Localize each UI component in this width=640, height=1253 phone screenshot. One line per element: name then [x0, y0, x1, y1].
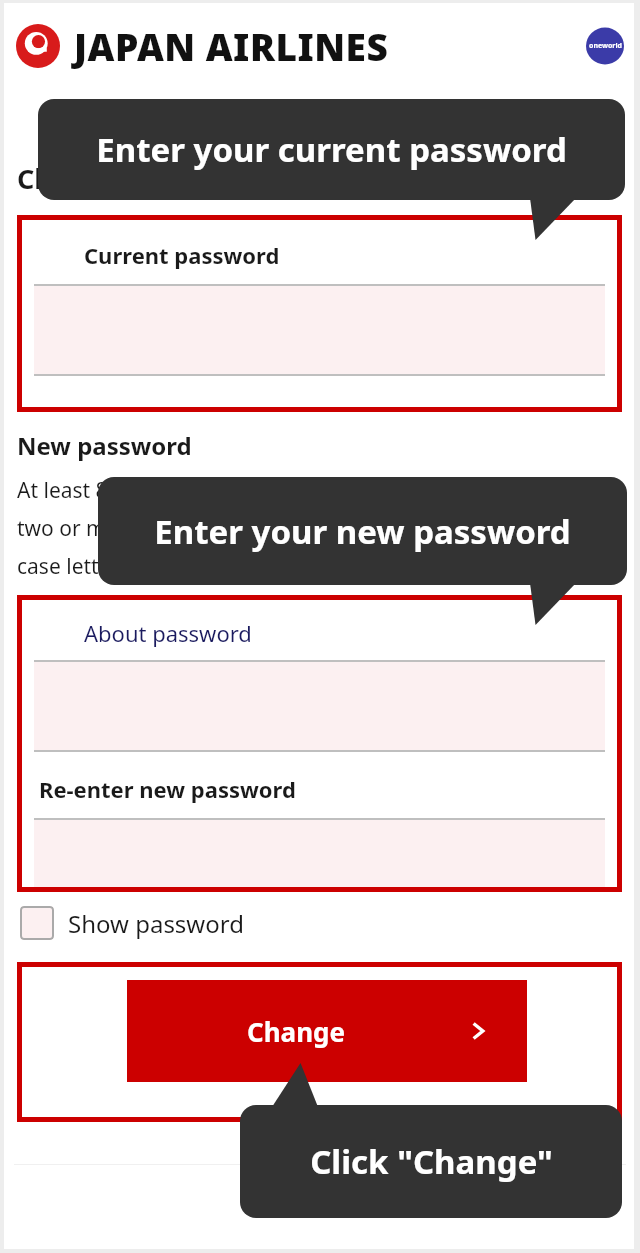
staticText: oneworld	[589, 41, 622, 51]
staticText: Show password	[68, 907, 244, 940]
button[interactable]: Change	[127, 980, 527, 1082]
staticText: Change	[247, 1014, 346, 1049]
button[interactable]: About password	[84, 618, 252, 648]
staticText: JAPAN AIRLINES	[74, 21, 389, 71]
staticText: About password	[84, 618, 252, 648]
staticText: New password	[17, 429, 192, 462]
staticText: Enter your new password	[154, 509, 571, 554]
staticText: At least 8 characters, using	[17, 476, 282, 505]
staticText: Change password	[17, 160, 255, 197]
staticText: Re-enter new password	[39, 774, 296, 804]
button[interactable]: oneworld	[586, 24, 624, 68]
staticText: two or more of upper	[17, 514, 229, 543]
staticText: Current password	[84, 240, 280, 270]
staticText: Enter your current password	[96, 127, 567, 172]
staticText: Click "Change"	[310, 1139, 553, 1184]
staticText: case letters, lower case	[17, 552, 245, 581]
button[interactable]: Show password	[20, 906, 244, 940]
